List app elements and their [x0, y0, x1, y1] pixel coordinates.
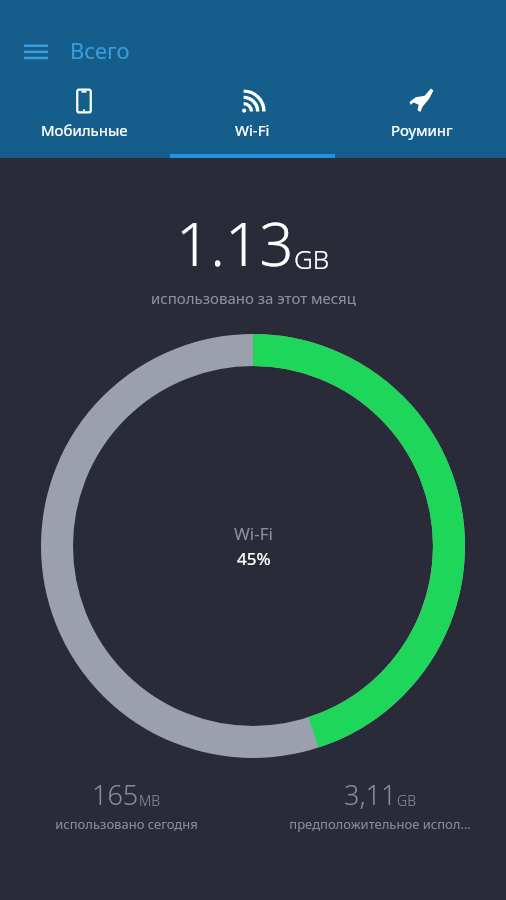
staticText: Wi-Fi: [234, 522, 273, 545]
staticText: 165: [92, 776, 139, 813]
staticText: использовано сегодня: [55, 815, 198, 833]
button[interactable]: 165: [0, 776, 253, 833]
staticText: использовано за этот месяц: [151, 288, 356, 308]
staticText: 45%: [237, 547, 271, 570]
staticText: МВ: [139, 791, 161, 810]
button[interactable]: Роуминг: [337, 78, 506, 158]
staticText: Wi-Fi: [235, 120, 270, 140]
staticText: предположительное испол…: [289, 815, 471, 833]
staticText: 1.13: [176, 202, 294, 284]
staticText: Роуминг: [391, 120, 453, 140]
staticText: Всего: [70, 35, 130, 65]
staticText: GB: [397, 791, 416, 810]
staticText: 3,11: [344, 776, 397, 813]
staticText: Мобильные: [41, 120, 128, 140]
staticText: GB: [294, 241, 330, 276]
button[interactable]: Мобильные: [0, 78, 168, 158]
button[interactable]: Wi-Fi: [168, 78, 337, 158]
button[interactable]: 3,11: [253, 776, 506, 833]
button[interactable]: Open navigation menu: [16, 30, 56, 70]
